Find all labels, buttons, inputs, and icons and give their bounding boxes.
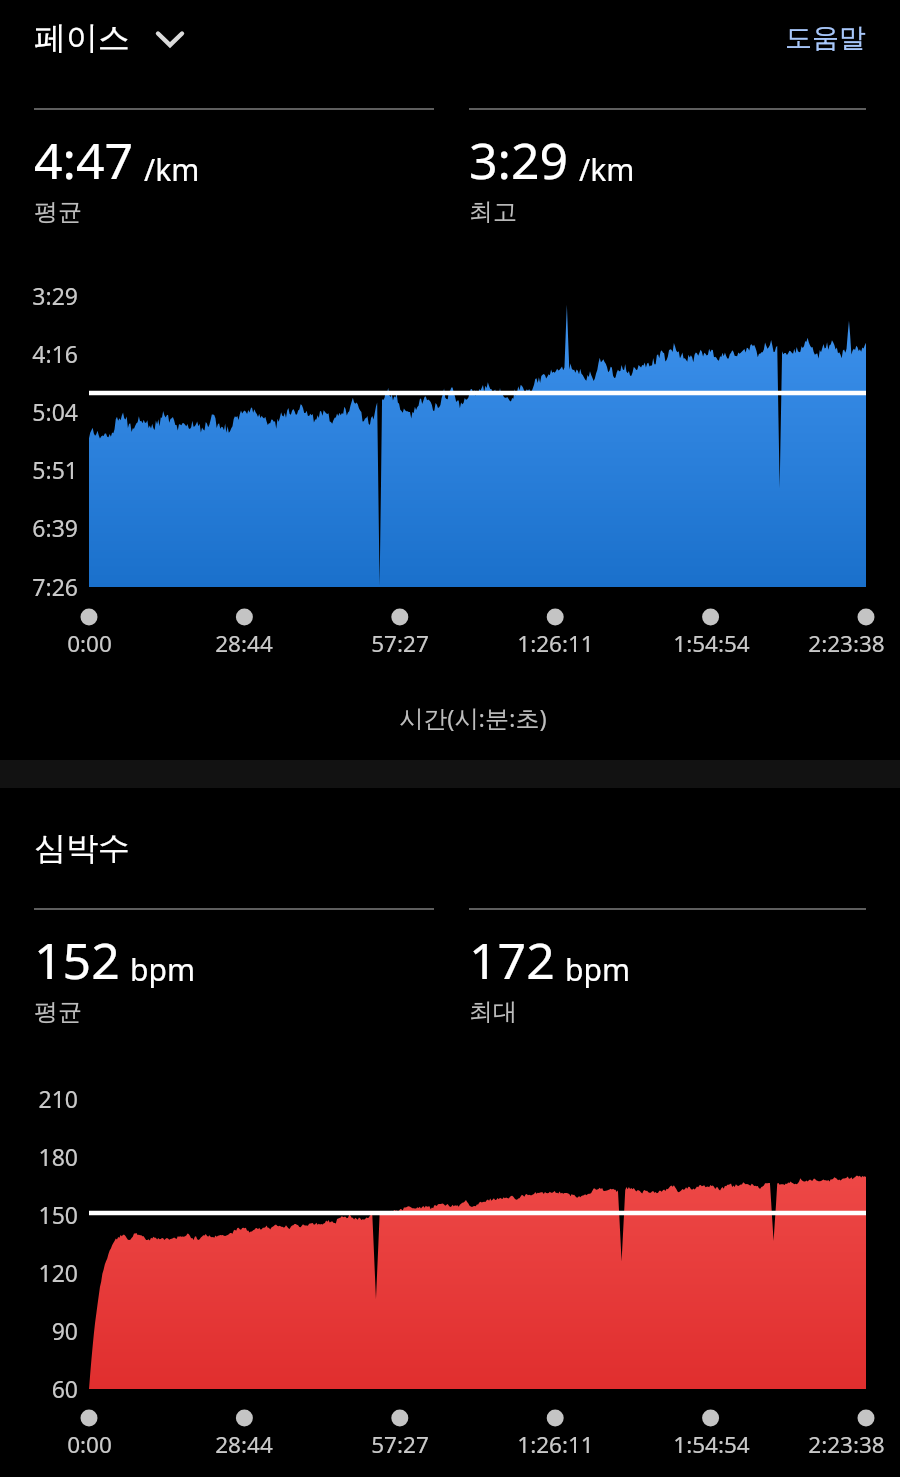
staticText: 172 <box>469 926 555 994</box>
staticText: 1:26:11 <box>517 1429 594 1460</box>
staticText: 152 <box>34 926 120 994</box>
staticText: 0:00 <box>67 628 112 659</box>
staticText: 3:29 <box>32 280 78 311</box>
staticText: 1:54:54 <box>673 628 750 659</box>
staticText: 평균 <box>34 197 82 227</box>
button[interactable]: 3:29 <box>469 108 866 227</box>
button[interactable]: 심박수 <box>34 828 130 868</box>
staticText: 60 <box>51 1373 78 1404</box>
staticText: 페이스 <box>34 18 130 58</box>
staticText: 6:39 <box>32 512 78 543</box>
staticText: 1:26:11 <box>517 628 594 659</box>
staticText: 심박수 <box>34 828 130 868</box>
staticText: 5:04 <box>32 396 78 427</box>
staticText: 2:23:38 <box>808 628 885 659</box>
staticText: 5:51 <box>32 454 78 485</box>
staticText: 150 <box>38 1199 78 1230</box>
staticText: 평균 <box>34 997 82 1027</box>
staticText: bpm <box>130 949 195 990</box>
staticText: 최고 <box>469 197 517 227</box>
staticText: 2:23:38 <box>808 1429 885 1460</box>
staticText: 3:29 <box>469 126 569 194</box>
staticText: 7:26 <box>32 571 78 602</box>
staticText: 210 <box>38 1083 78 1114</box>
staticText: 180 <box>38 1141 78 1172</box>
staticText: 도움말 <box>785 21 866 55</box>
button[interactable]: 페이스 <box>34 18 188 58</box>
staticText: 4:16 <box>32 338 78 369</box>
button[interactable]: 도움말 <box>785 21 866 55</box>
staticText: 시간(시:분:초) <box>399 701 547 734</box>
button[interactable]: 4:47 <box>34 108 434 227</box>
staticText: /km <box>579 149 635 190</box>
staticText: bpm <box>565 949 630 990</box>
staticText: 28:44 <box>215 1429 273 1460</box>
other: Change metric <box>152 20 188 56</box>
staticText: 120 <box>38 1257 78 1288</box>
staticText: 0:00 <box>67 1429 112 1460</box>
staticText: 57:27 <box>371 1429 429 1460</box>
staticText: 최대 <box>469 997 517 1027</box>
staticText: 28:44 <box>215 628 273 659</box>
staticText: 90 <box>51 1315 78 1346</box>
button[interactable]: 172 <box>469 908 866 1027</box>
staticText: 1:54:54 <box>673 1429 750 1460</box>
staticText: /km <box>144 149 200 190</box>
staticText: 57:27 <box>371 628 429 659</box>
button[interactable]: 152 <box>34 908 434 1027</box>
staticText: 4:47 <box>34 126 134 194</box>
